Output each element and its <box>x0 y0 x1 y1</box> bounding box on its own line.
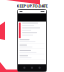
button[interactable] <box>19 49 44 54</box>
button[interactable] <box>19 38 44 43</box>
staticText: KEEP UP-TO-DATE <box>16 3 47 8</box>
button[interactable] <box>19 54 44 59</box>
button[interactable] <box>19 43 44 49</box>
staticText: Stay in the loop <box>21 9 43 13</box>
